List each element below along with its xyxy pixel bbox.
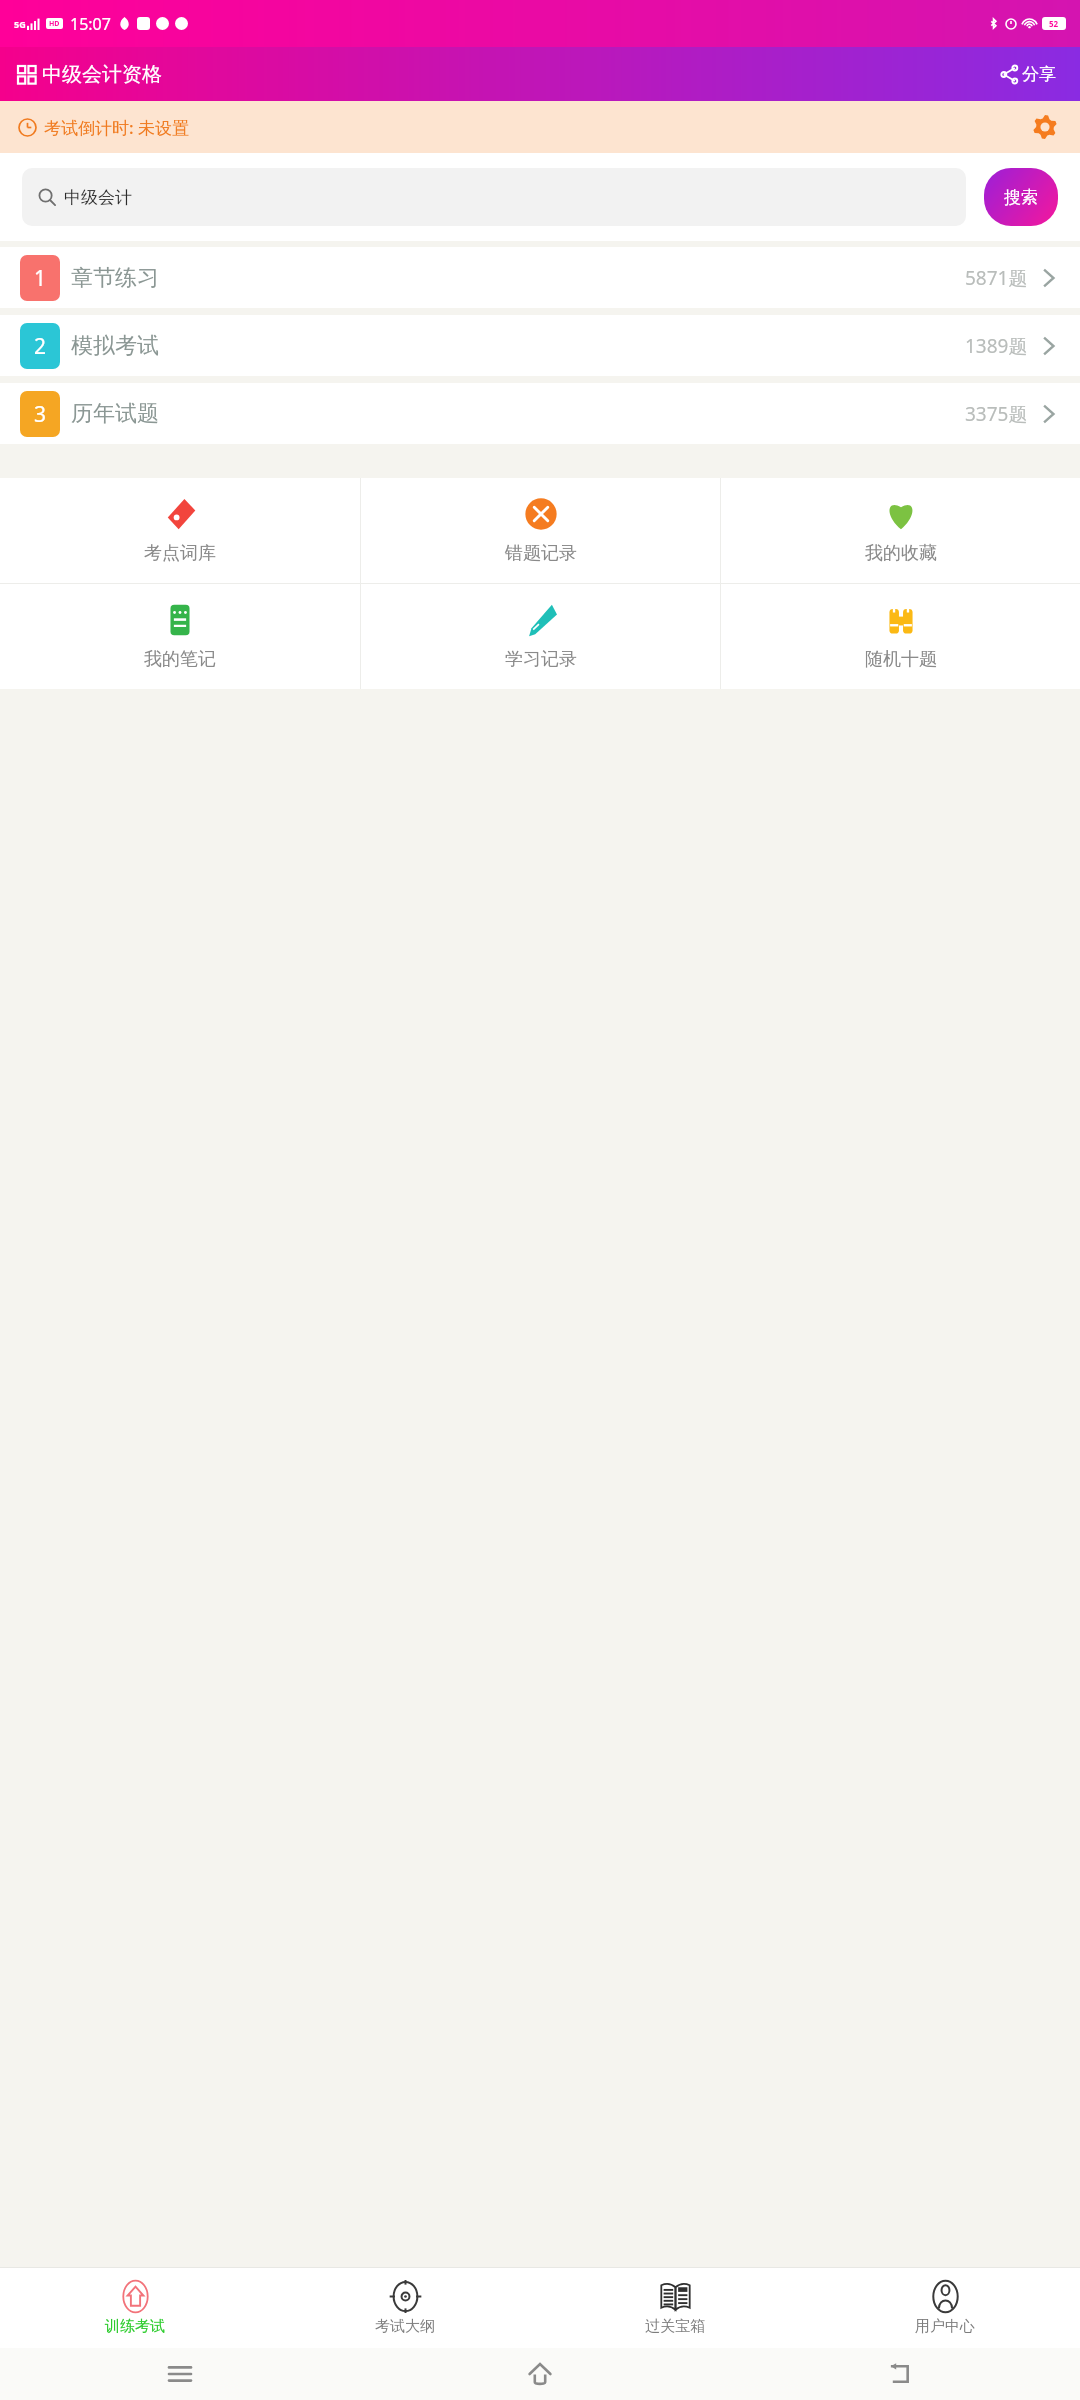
other: Share [1000, 65, 1019, 84]
staticText: 中级会计 [64, 187, 132, 208]
button[interactable]: 考试大纲 [270, 2268, 540, 2348]
staticText: 分享 [1022, 64, 1056, 85]
staticText: 我的收藏 [865, 542, 937, 565]
staticText: 1389题 [965, 333, 1028, 359]
button[interactable]: 训练考试 [0, 2268, 270, 2348]
staticText: 15:07 [70, 13, 111, 35]
button[interactable]: 随机十题 [721, 584, 1080, 689]
button[interactable]: 中级会计 [22, 168, 966, 226]
button[interactable]: 3 [0, 383, 1080, 444]
button[interactable]: 设置 [1028, 110, 1062, 144]
button[interactable]: 我的收藏 [721, 478, 1080, 583]
button[interactable]: 错题记录 [361, 478, 720, 583]
staticText: 用户中心 [915, 2317, 975, 2336]
button[interactable]: 中级会计资格 [18, 58, 162, 91]
staticText: 错题记录 [505, 542, 577, 565]
staticText: 52 [1049, 18, 1059, 29]
staticText: 历年试题 [71, 400, 159, 428]
staticText: 学习记录 [505, 648, 577, 671]
staticText: 5G [14, 18, 26, 30]
staticText: 考试大纲 [375, 2317, 435, 2336]
button[interactable]: Share [994, 58, 1062, 91]
button[interactable]: 搜索 [984, 168, 1058, 226]
button[interactable]: 学习记录 [361, 584, 720, 689]
button[interactable]: 用户中心 [810, 2268, 1080, 2348]
staticText: 1 [34, 264, 47, 293]
button[interactable]: Recents [0, 2348, 360, 2400]
staticText: 3 [34, 400, 47, 429]
button[interactable]: Back [720, 2348, 1080, 2400]
staticText: 中级会计资格 [42, 62, 162, 87]
button[interactable]: 1 [0, 247, 1080, 308]
staticText: 考点词库 [144, 542, 216, 565]
staticText: 2 [34, 332, 47, 361]
staticText: 训练考试 [105, 2317, 165, 2336]
staticText: 我的笔记 [144, 648, 216, 671]
staticText: 章节练习 [71, 264, 159, 292]
button[interactable]: Home [360, 2348, 720, 2400]
staticText: 考试倒计时: 未设置 [44, 116, 190, 139]
button[interactable]: 2 [0, 315, 1080, 376]
button[interactable]: 我的笔记 [0, 584, 360, 689]
staticText: 随机十题 [865, 648, 937, 671]
staticText: 模拟考试 [71, 332, 159, 360]
staticText: 搜索 [1004, 187, 1038, 208]
button[interactable]: 过关宝箱 [540, 2268, 810, 2348]
staticText: HD [49, 19, 60, 29]
staticText: 5871题 [965, 265, 1028, 291]
staticText: 3375题 [965, 401, 1028, 427]
button[interactable]: 考点词库 [0, 478, 360, 583]
button[interactable]: 考试倒计时: 未设置 [0, 101, 1080, 153]
staticText: 过关宝箱 [645, 2317, 705, 2336]
